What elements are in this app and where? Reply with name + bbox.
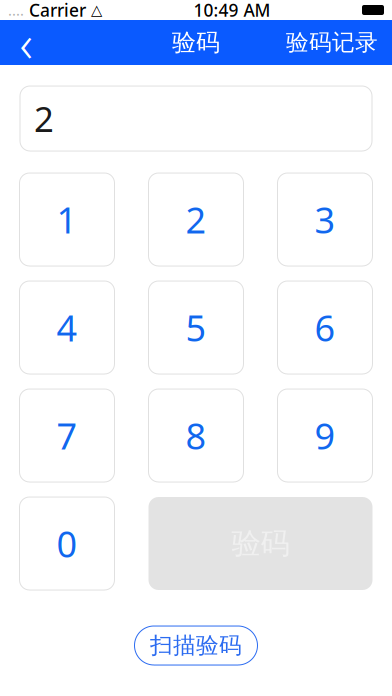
button[interactable]: 0 (19, 497, 114, 590)
staticText: 验码 (231, 525, 289, 561)
button[interactable]: 扫描验码 (134, 626, 257, 665)
staticText: 6 (314, 304, 335, 351)
button[interactable]: 4 (19, 281, 114, 374)
staticText: 4 (56, 304, 77, 351)
staticText: △ (91, 2, 102, 18)
button[interactable]: 验码记录 (272, 20, 392, 65)
staticText: 验码 (172, 28, 220, 57)
staticText: 10:49 AM (193, 0, 270, 21)
staticText: 2 (185, 196, 206, 243)
button[interactable]: 2 (148, 173, 243, 266)
staticText: 0 (56, 520, 77, 567)
button[interactable]: 1 (19, 173, 114, 266)
staticText: 9 (314, 412, 335, 459)
button[interactable]: 7 (19, 389, 114, 482)
button[interactable]: 6 (277, 281, 372, 374)
staticText: 2 (34, 95, 54, 141)
staticText: 8 (185, 412, 206, 459)
staticText: 扫描验码 (150, 632, 242, 659)
staticText: 5 (185, 304, 206, 351)
button[interactable]: 5 (148, 281, 243, 374)
staticText: 验码记录 (286, 29, 378, 56)
button[interactable]: 9 (277, 389, 372, 482)
button[interactable]: Back (0, 20, 52, 65)
staticText: Carrier (24, 0, 91, 21)
staticText: 1 (56, 196, 77, 243)
staticText: ‹ (19, 9, 32, 76)
staticText: 7 (56, 412, 77, 459)
button[interactable]: 3 (277, 173, 372, 266)
staticText: .... (8, 0, 24, 20)
staticText: 3 (314, 196, 335, 243)
button[interactable]: 8 (148, 389, 243, 482)
